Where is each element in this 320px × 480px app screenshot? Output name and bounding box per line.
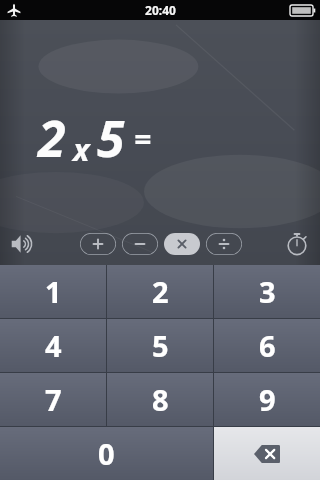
staticText: 0 [98, 434, 115, 473]
button[interactable]: 4 [0, 319, 106, 372]
button[interactable]: 1 [0, 265, 106, 318]
other: Battery [290, 5, 315, 16]
button[interactable]: ÷ [206, 233, 242, 255]
staticText: 5 [152, 326, 169, 365]
staticText: 6 [259, 326, 276, 365]
button[interactable]: Timer [280, 227, 314, 261]
staticText: = [134, 118, 152, 159]
staticText: 3 [259, 272, 276, 311]
button[interactable]: + [80, 233, 116, 255]
staticText: x [73, 128, 90, 170]
staticText: 2 [152, 272, 169, 311]
button[interactable]: 5 [107, 319, 213, 372]
other: Airplane mode [7, 3, 21, 17]
button[interactable]: 6 [214, 319, 320, 372]
button[interactable]: 0 [0, 427, 213, 480]
button[interactable]: 3 [214, 265, 320, 318]
button[interactable]: 2 [107, 265, 213, 318]
button[interactable]: − [122, 233, 158, 255]
staticText: 7 [45, 380, 62, 419]
button[interactable]: × [164, 233, 200, 255]
staticText: 9 [259, 380, 276, 419]
button[interactable]: 8 [107, 373, 213, 426]
button[interactable]: 9 [214, 373, 320, 426]
staticText: 4 [45, 326, 62, 365]
staticText: 1 [45, 272, 62, 311]
button[interactable]: 7 [0, 373, 106, 426]
staticText: 20:40 [145, 2, 176, 18]
staticText: 5 [97, 104, 125, 172]
staticText: 8 [152, 380, 169, 419]
staticText: 2 [38, 104, 66, 172]
button[interactable]: Backspace [214, 427, 320, 480]
button[interactable]: Sound [6, 227, 40, 261]
